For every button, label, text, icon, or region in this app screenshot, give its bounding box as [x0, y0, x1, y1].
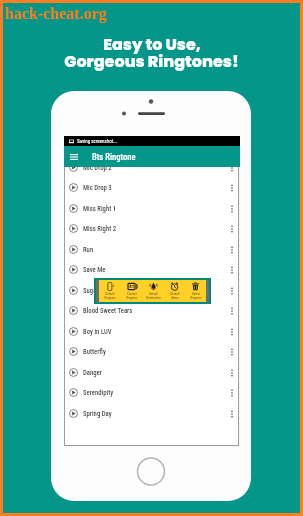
button[interactable]: More options [225, 280, 238, 301]
button[interactable]: Save Me [64, 259, 239, 280]
staticText: Mic Drop 3 [83, 184, 112, 192]
button[interactable]: More options [225, 382, 238, 403]
staticText: hack-cheat.org [5, 5, 107, 23]
button[interactable]: Suga [64, 280, 239, 301]
staticText: Contact Ringtone [126, 292, 138, 300]
staticText: Run [83, 246, 94, 254]
button[interactable]: More options [225, 218, 238, 239]
button[interactable]: Default Alarm [164, 280, 185, 302]
button[interactable]: Serendipity [64, 382, 239, 403]
button[interactable]: More options [225, 321, 238, 342]
button[interactable]: More options [225, 259, 238, 280]
staticText: Bts Ringtone [92, 152, 136, 162]
button[interactable]: More options [225, 177, 238, 198]
staticText: Save Me [83, 266, 106, 274]
button[interactable]: Contact Ringtone [121, 280, 143, 302]
button[interactable]: Open navigation menu [64, 146, 84, 167]
button[interactable]: Spring Day [64, 403, 239, 424]
staticText: Default Alarm [170, 292, 180, 300]
button[interactable]: Mic Drop 3 [64, 177, 239, 198]
staticText: Suga [83, 287, 97, 295]
staticText: Easy to Use, [103, 33, 201, 55]
button[interactable]: More options [225, 239, 238, 260]
button[interactable]: More options [225, 403, 238, 424]
staticText: Blood Sweet Tears [83, 307, 133, 315]
staticText: Boy in LUV [83, 328, 112, 336]
staticText: Miss Right 1 [83, 205, 117, 213]
staticText: Miss Right 2 [83, 225, 117, 233]
button[interactable]: Mic Drop 2 [64, 157, 239, 178]
button[interactable]: Butterfly [64, 341, 239, 362]
staticText: Default Ringtone [104, 292, 116, 300]
staticText: Mic Drop 2 [83, 164, 112, 172]
staticText: Gorgeous Ringtones! [64, 50, 239, 72]
button[interactable]: More options [225, 198, 238, 219]
button[interactable]: Blood Sweet Tears [64, 300, 239, 321]
staticText: Butterfly [83, 348, 106, 356]
button[interactable]: Miss Right 1 [64, 198, 239, 219]
button[interactable]: Default Notification [143, 280, 164, 302]
button[interactable]: More options [225, 341, 238, 362]
button[interactable]: Danger [64, 362, 239, 383]
staticText: Danger [83, 369, 102, 377]
button[interactable]: Delete Ringtone [185, 280, 206, 302]
button[interactable]: Run [64, 239, 239, 260]
staticText: Spring Day [83, 410, 112, 418]
button[interactable]: More options [225, 362, 238, 383]
button[interactable]: More options [225, 300, 238, 321]
button[interactable]: Miss Right 2 [64, 218, 239, 239]
staticText: Serendipity [83, 389, 114, 397]
staticText: Saving screenshot... [77, 138, 118, 144]
button[interactable]: Boy in LUV [64, 321, 239, 342]
button[interactable]: More options [225, 157, 238, 178]
staticText: Default Notification [146, 292, 161, 300]
button[interactable]: Default Ringtone [99, 280, 121, 302]
staticText: Delete Ringtone [190, 292, 202, 300]
